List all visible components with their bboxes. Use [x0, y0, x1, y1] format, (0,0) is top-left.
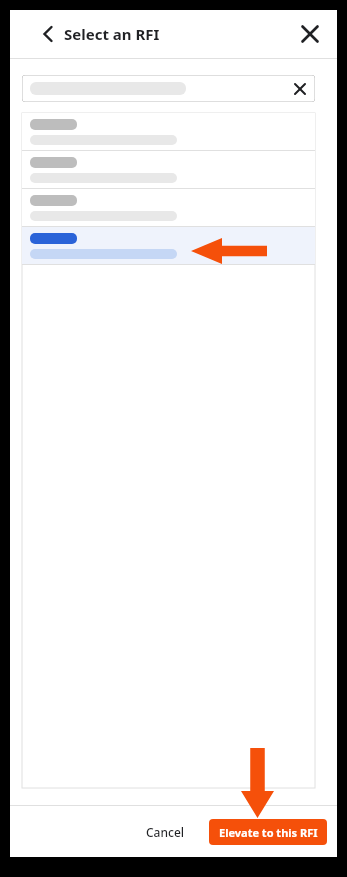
- staticText: Elevate to this RFI: [219, 825, 318, 840]
- staticText: Cancel: [146, 824, 185, 840]
- button[interactable]: [22, 189, 315, 226]
- button[interactable]: [22, 113, 315, 150]
- button[interactable]: Close: [290, 14, 330, 54]
- staticText: Select an RFI: [64, 24, 160, 44]
- button[interactable]: Clear search: [289, 78, 311, 100]
- button[interactable]: [22, 227, 315, 264]
- button[interactable]: Cancel: [136, 818, 195, 846]
- button[interactable]: [22, 151, 315, 188]
- button[interactable]: Back: [28, 14, 68, 54]
- button[interactable]: Elevate to this RFI: [209, 819, 327, 845]
- button[interactable]: Clear search: [22, 75, 315, 102]
